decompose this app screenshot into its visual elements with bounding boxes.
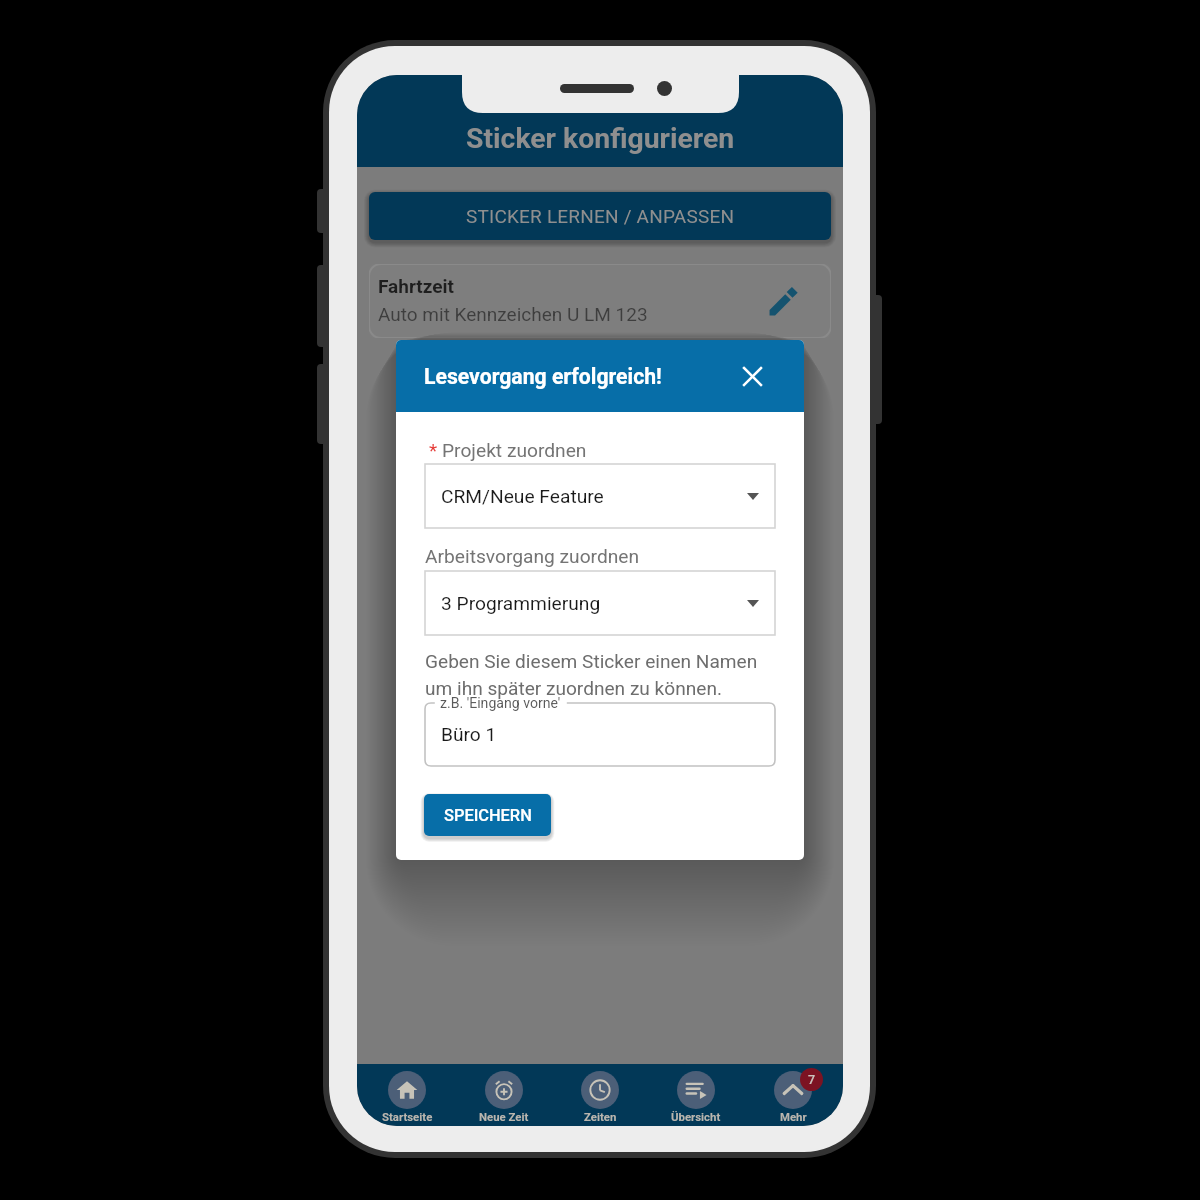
staticText: Sticker konfigurieren <box>466 122 735 155</box>
staticText: Mehr <box>780 1110 807 1123</box>
staticText: Fahrtzeit <box>378 275 455 297</box>
staticText: 3 Programmierung <box>441 592 601 615</box>
button[interactable]: Neue Zeit <box>458 1064 550 1126</box>
staticText: Übersicht <box>671 1110 721 1123</box>
staticText: z.B. 'Eingang vorne' <box>440 695 561 712</box>
button[interactable]: 3 Programmierung <box>425 571 775 635</box>
staticText: Lesevorgang erfolgreich! <box>424 364 662 389</box>
staticText: 7 <box>808 1072 816 1087</box>
staticText: Zeiten <box>584 1110 617 1123</box>
staticText: STICKER LERNEN / ANPASSEN <box>466 205 735 227</box>
staticText: Startseite <box>382 1110 433 1123</box>
staticText: Büro 1 <box>441 723 497 746</box>
button[interactable]: Zeiten <box>554 1064 646 1126</box>
staticText: Auto mit Kennzeichen U LM 123 <box>378 303 648 325</box>
button[interactable]: Schliessen <box>736 360 768 392</box>
staticText: * <box>429 439 438 461</box>
button[interactable]: Übersicht <box>650 1064 742 1126</box>
staticText: SPEICHERN <box>444 806 532 825</box>
staticText: Projekt zuordnen <box>442 439 587 462</box>
button[interactable]: STICKER LERNEN / ANPASSEN <box>369 192 831 240</box>
button[interactable]: SPEICHERN <box>424 794 551 836</box>
staticText: CRM/Neue Feature <box>441 485 604 508</box>
button[interactable]: Mehr <box>747 1064 839 1126</box>
button[interactable]: Startseite <box>361 1064 453 1126</box>
staticText: Geben Sie diesem Sticker einen Namen um … <box>425 650 758 700</box>
button[interactable]: Fahrtzeit <box>369 264 831 338</box>
staticText: Arbeitsvorgang zuordnen <box>425 545 640 568</box>
staticText: Neue Zeit <box>479 1110 529 1123</box>
button[interactable]: CRM/Neue Feature <box>425 464 775 528</box>
